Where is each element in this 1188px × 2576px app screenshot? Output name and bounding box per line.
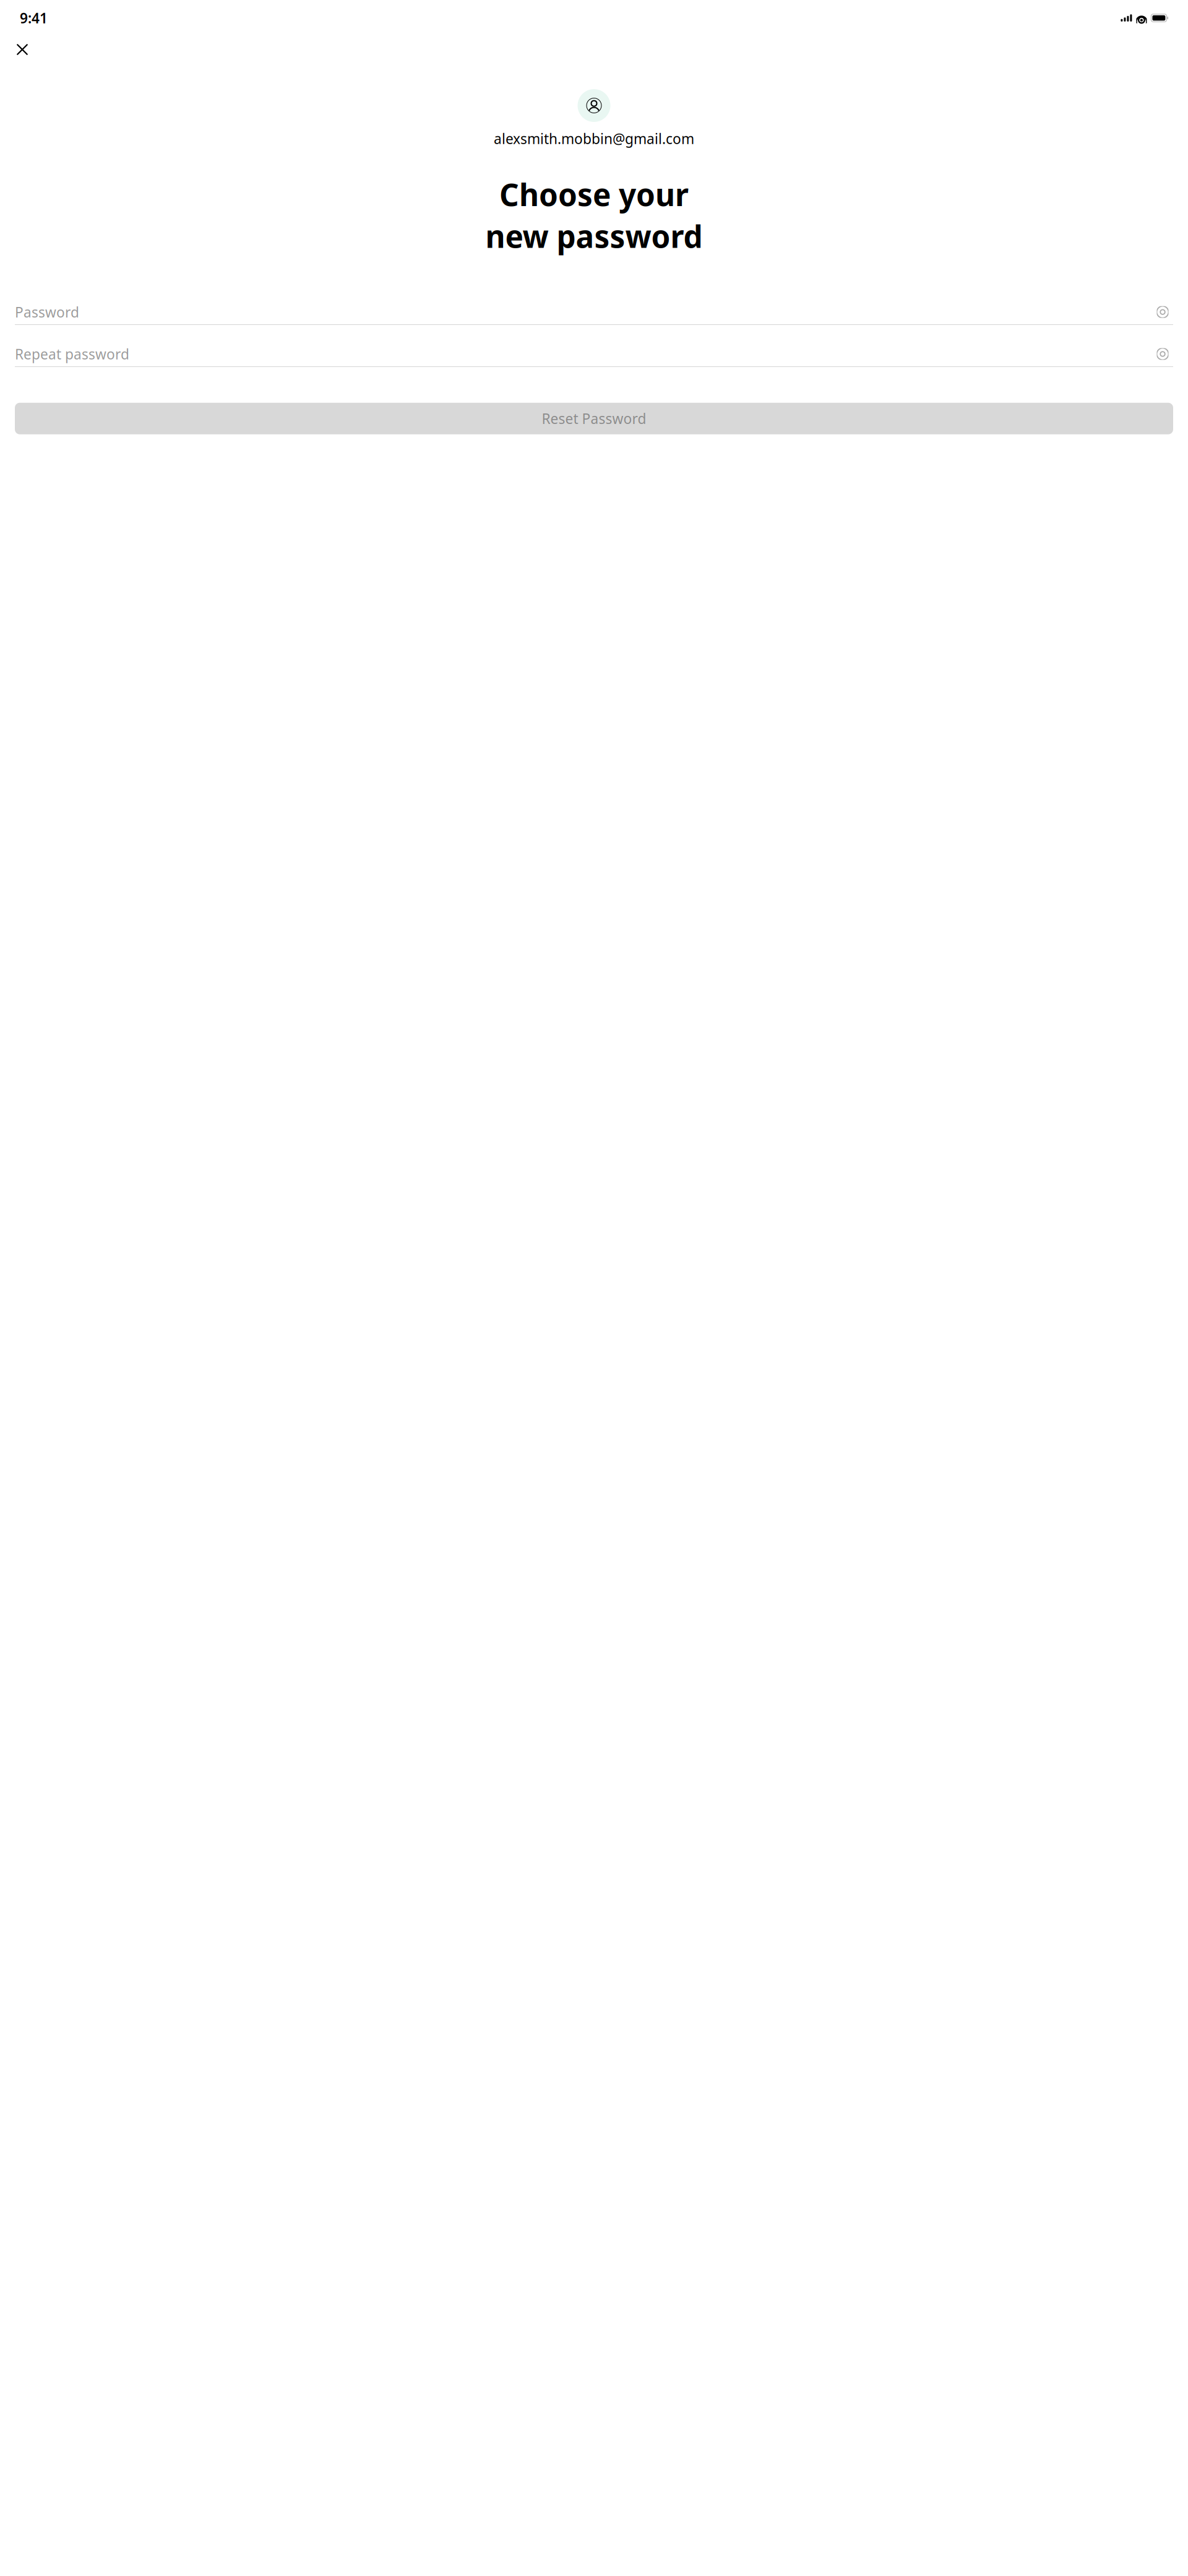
- staticText: Password: [15, 303, 79, 321]
- button[interactable]: Reset Password: [15, 403, 1173, 434]
- button[interactable]: Show Password: [1152, 301, 1173, 323]
- button[interactable]: Close: [9, 36, 36, 63]
- staticText: 9:41: [20, 9, 48, 27]
- staticText: alexsmith.mobbin@gmail.com: [494, 129, 694, 148]
- staticText: Choose your: [499, 174, 689, 215]
- staticText: Reset Password: [542, 409, 646, 428]
- staticText: new password: [485, 216, 703, 256]
- staticText: Repeat password: [15, 345, 129, 363]
- button[interactable]: Show Repeat password: [1152, 343, 1173, 364]
